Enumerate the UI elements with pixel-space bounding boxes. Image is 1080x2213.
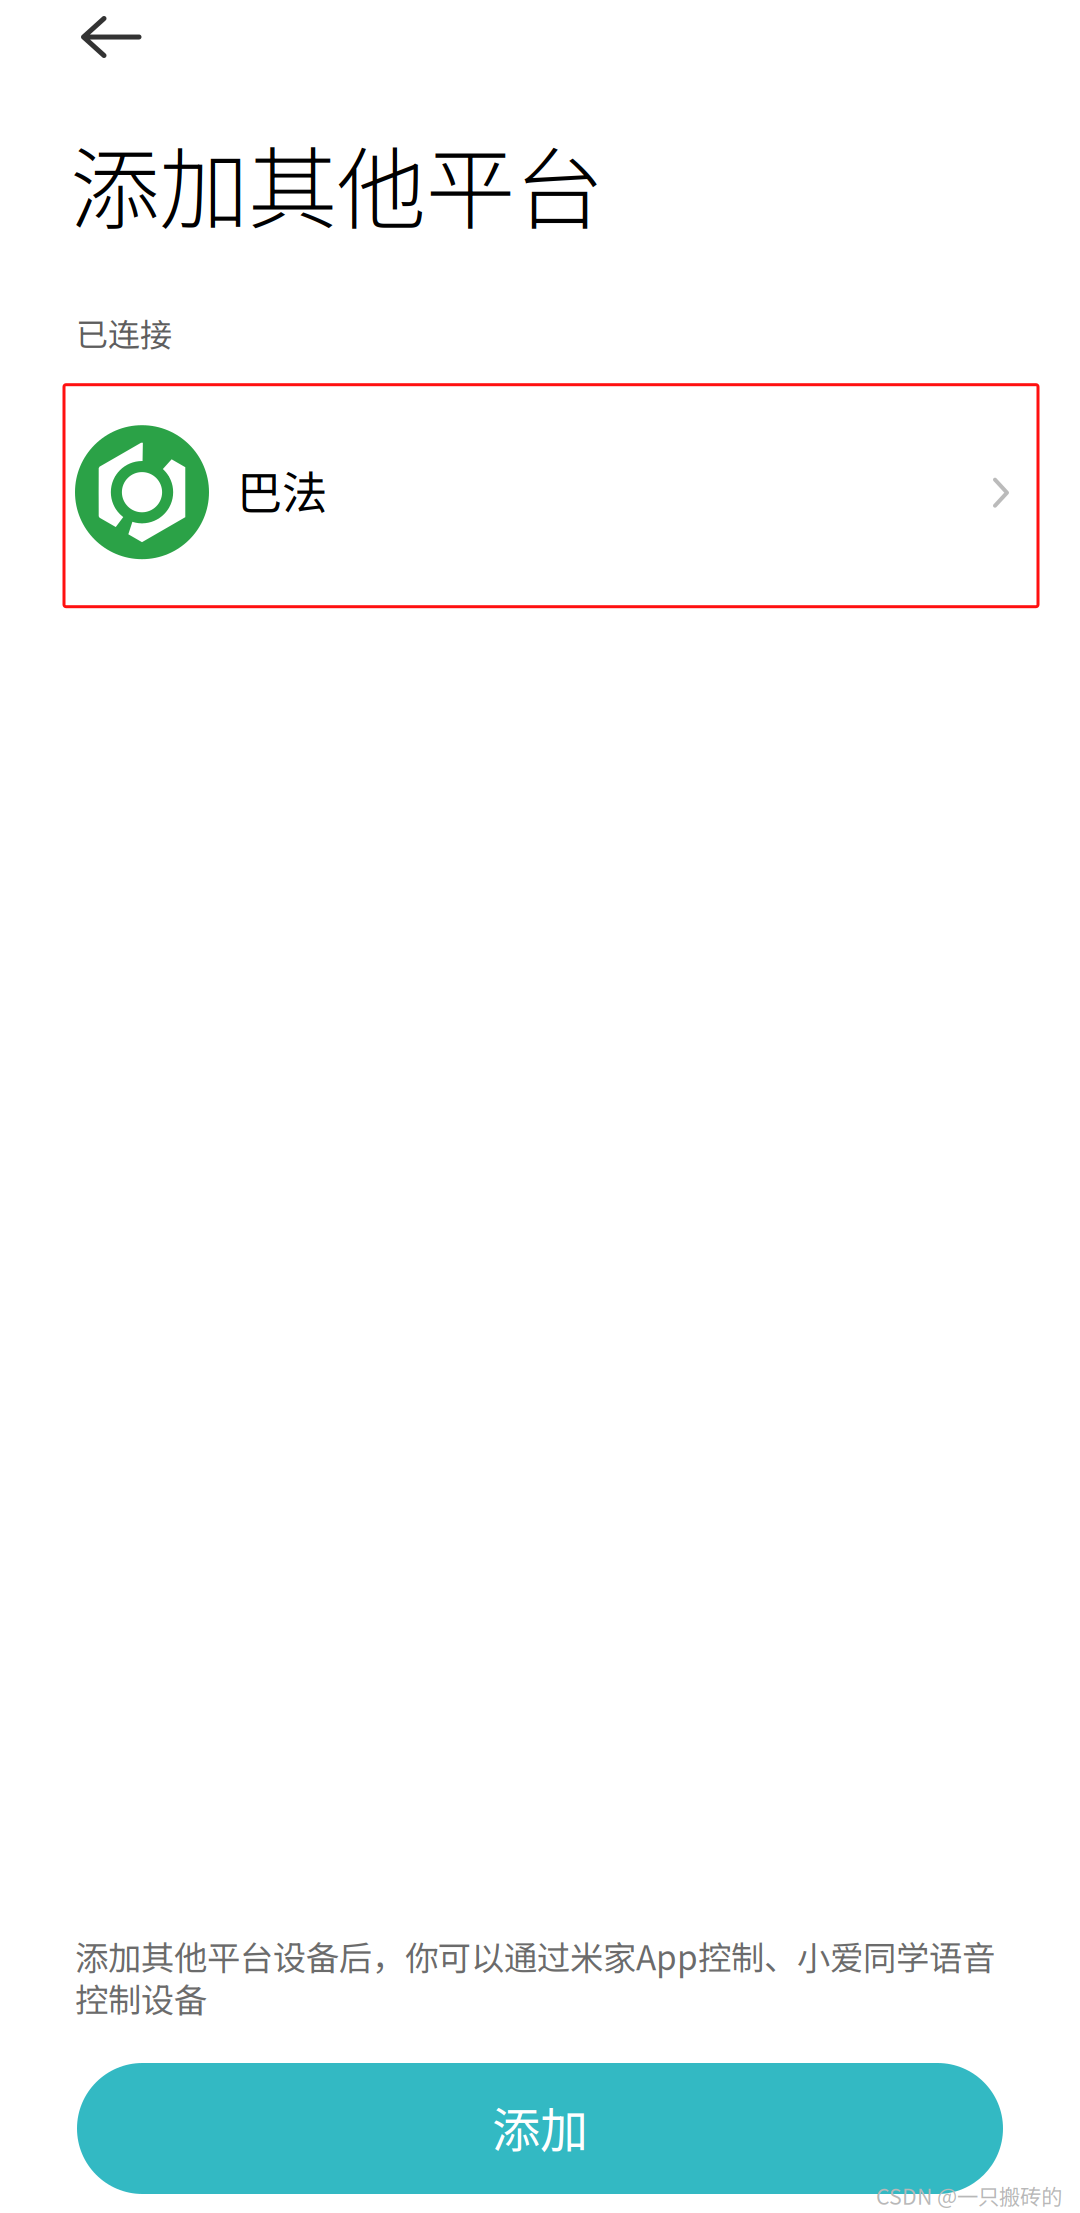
staticText: 控制设备 (75, 1974, 207, 2022)
button[interactable]: 巴法 (64, 385, 1038, 607)
staticText: 巴法 (237, 457, 327, 522)
staticText: 已连接 (76, 309, 172, 356)
button[interactable]: 添加 (77, 2063, 1003, 2194)
staticText: 添加其他平台设备后，你可以通过米家App控制、小爱同学语音 (75, 1931, 995, 1980)
staticText: 添加 (492, 2092, 588, 2161)
staticText: 添加其他平台 (70, 118, 604, 247)
staticText: CSDN @一只搬砖的猪 (876, 2180, 1062, 2213)
button[interactable]: 返回 (0, 0, 165, 74)
